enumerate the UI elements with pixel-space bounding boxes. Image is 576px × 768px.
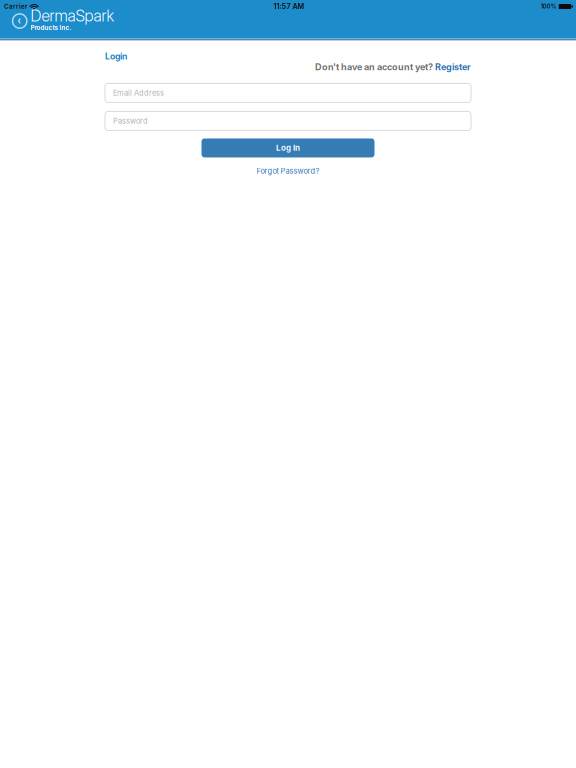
staticText: Carrier	[4, 3, 27, 10]
button[interactable]: Email Address	[105, 83, 471, 102]
staticText: Register	[435, 61, 471, 72]
button[interactable]: Password	[105, 111, 471, 130]
staticText: Products Inc.	[30, 24, 71, 31]
staticText: Don't have an account yet?	[315, 61, 435, 72]
staticText: Password	[113, 116, 148, 125]
button[interactable]: Forgot Password?	[256, 164, 319, 177]
staticText: 11:57 AM	[274, 2, 305, 11]
staticText: 100%	[541, 3, 557, 10]
staticText: Log In	[276, 143, 300, 153]
button[interactable]: Back	[10, 6, 28, 24]
button[interactable]: Register	[435, 61, 471, 72]
staticText: Login	[105, 51, 127, 61]
staticText: Forgot Password?	[256, 166, 319, 175]
staticText: DermaSpark	[30, 6, 114, 25]
button[interactable]: Log In	[201, 138, 374, 157]
staticText: Email Address	[113, 88, 164, 97]
